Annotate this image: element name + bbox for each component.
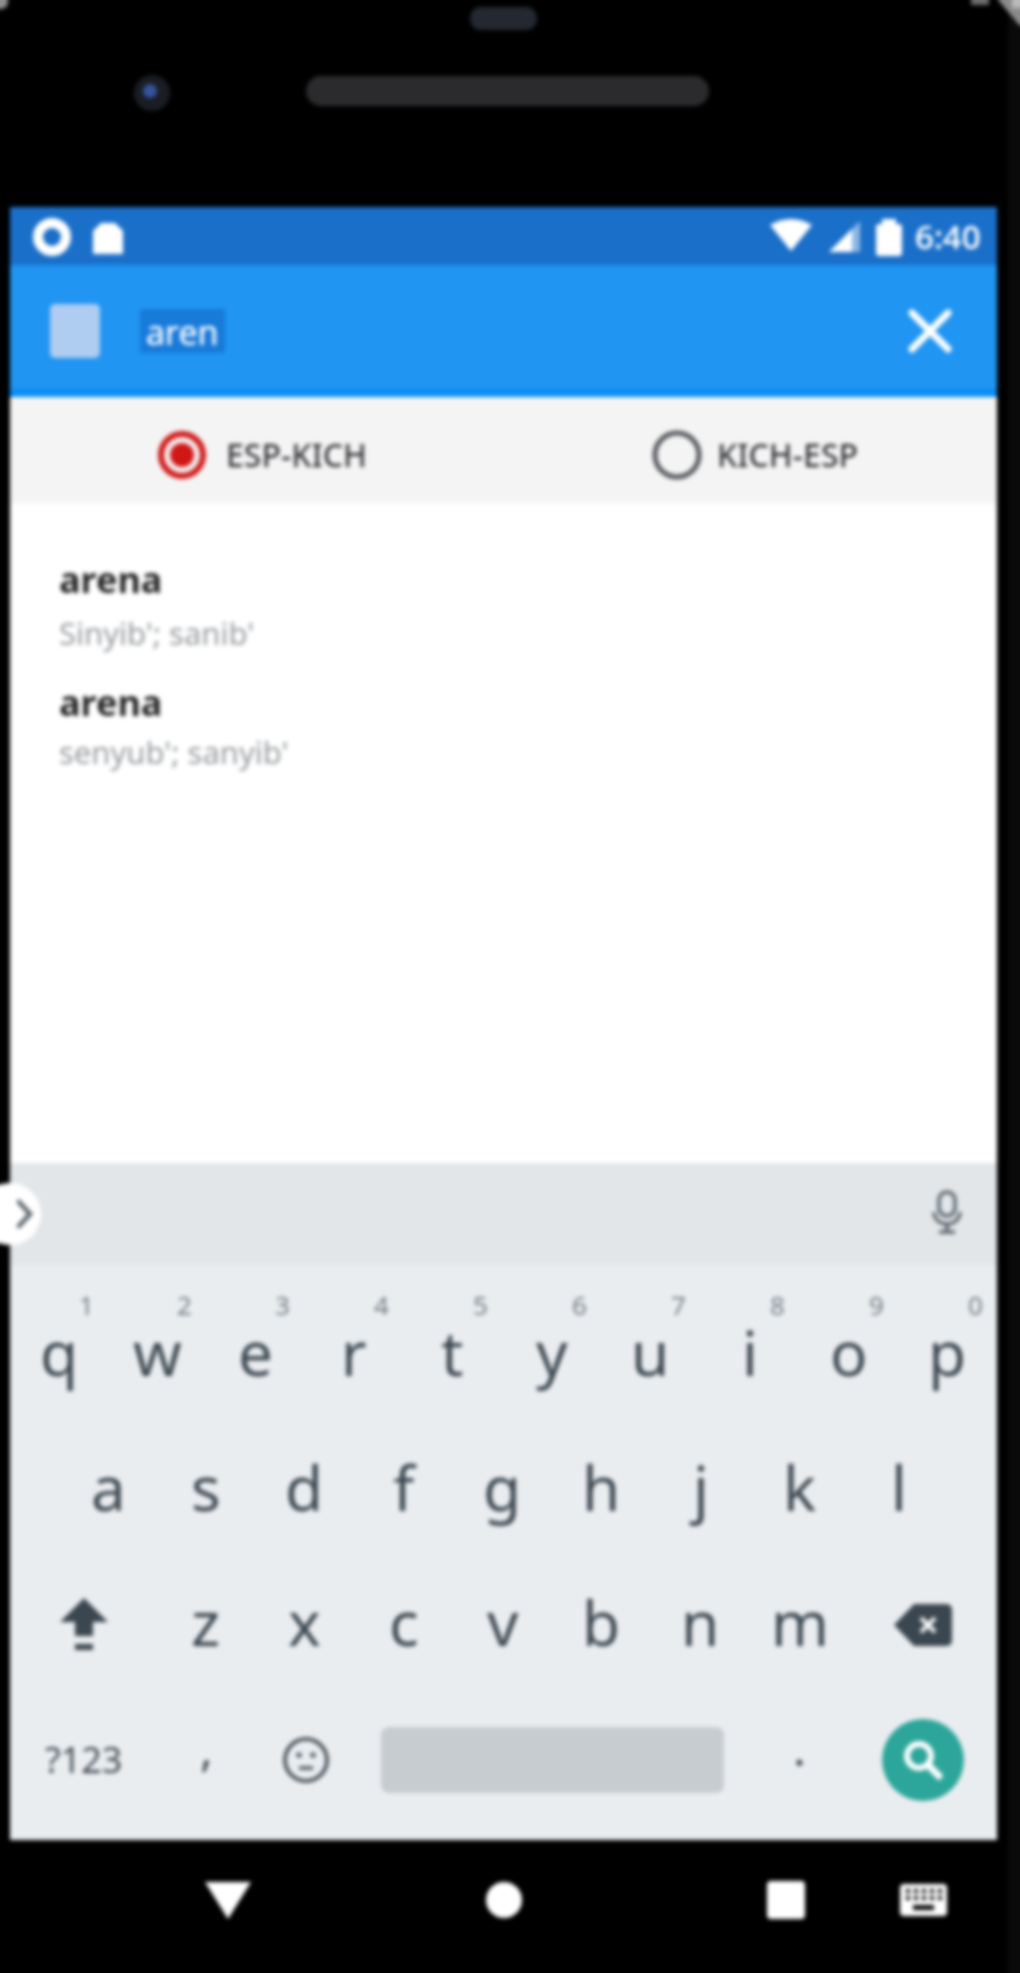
staticText: j bbox=[693, 1445, 709, 1529]
staticText: 3 bbox=[275, 1287, 290, 1322]
staticText: t bbox=[441, 1310, 464, 1394]
button[interactable] bbox=[10, 1557, 157, 1692]
staticText: , bbox=[200, 1715, 213, 1780]
staticText: ESP-KICH bbox=[226, 433, 368, 477]
staticText: a bbox=[91, 1445, 126, 1529]
staticText: senyub'; sanyib' bbox=[59, 731, 289, 773]
button[interactable]: u bbox=[601, 1287, 700, 1422]
button[interactable]: x bbox=[255, 1557, 354, 1692]
button[interactable]: s bbox=[157, 1422, 255, 1557]
staticText: Sinyib'; sanib' bbox=[59, 612, 255, 654]
button[interactable]: k bbox=[750, 1422, 849, 1557]
staticText: 4 bbox=[374, 1287, 389, 1322]
button[interactable]: h bbox=[552, 1422, 651, 1557]
button[interactable] bbox=[195, 1867, 261, 1933]
staticText: g bbox=[483, 1445, 522, 1529]
staticText: b bbox=[582, 1580, 621, 1664]
staticText: ?123 bbox=[45, 1735, 123, 1784]
button[interactable]: , bbox=[157, 1692, 256, 1827]
staticText: 1 bbox=[79, 1287, 94, 1322]
staticText: z bbox=[191, 1580, 221, 1664]
staticText: KICH-ESP bbox=[717, 433, 859, 477]
button[interactable] bbox=[355, 1692, 750, 1827]
staticText: n bbox=[681, 1580, 720, 1664]
staticText: e bbox=[238, 1310, 273, 1394]
button[interactable]: aren bbox=[146, 309, 219, 353]
button[interactable]: arena bbox=[59, 678, 997, 773]
button[interactable]: . bbox=[750, 1692, 849, 1827]
button[interactable] bbox=[0, 1183, 41, 1245]
button[interactable] bbox=[753, 1867, 819, 1933]
button[interactable]: y bbox=[502, 1287, 601, 1422]
staticText: x bbox=[288, 1580, 321, 1664]
button[interactable]: z bbox=[157, 1557, 255, 1692]
staticText: . bbox=[793, 1715, 806, 1780]
staticText: arena bbox=[59, 555, 163, 604]
staticText: 7 bbox=[671, 1287, 686, 1322]
staticText: m bbox=[771, 1580, 829, 1664]
button[interactable]: arena bbox=[59, 555, 997, 654]
button[interactable]: e bbox=[206, 1287, 304, 1422]
button[interactable]: m bbox=[750, 1557, 849, 1692]
staticText: p bbox=[928, 1310, 967, 1394]
staticText: arena bbox=[59, 678, 163, 727]
staticText: 5 bbox=[473, 1287, 488, 1322]
staticText: 6 bbox=[572, 1287, 587, 1322]
button[interactable]: v bbox=[453, 1557, 552, 1692]
button[interactable]: b bbox=[552, 1557, 651, 1692]
button[interactable]: q bbox=[10, 1287, 108, 1422]
button[interactable]: i bbox=[700, 1287, 799, 1422]
button[interactable]: n bbox=[651, 1557, 750, 1692]
staticText: h bbox=[582, 1445, 621, 1529]
staticText: 9 bbox=[869, 1287, 884, 1322]
button[interactable]: f bbox=[354, 1422, 453, 1557]
button[interactable]: l bbox=[849, 1422, 948, 1557]
staticText: 8 bbox=[770, 1287, 785, 1322]
staticText: w bbox=[133, 1310, 182, 1394]
staticText: q bbox=[40, 1310, 79, 1394]
button[interactable]: c bbox=[354, 1557, 453, 1692]
staticText: 0 bbox=[968, 1287, 983, 1322]
staticText: l bbox=[891, 1445, 907, 1529]
button[interactable] bbox=[256, 1692, 355, 1827]
button[interactable]: p bbox=[898, 1287, 997, 1422]
button[interactable]: w bbox=[108, 1287, 206, 1422]
button[interactable] bbox=[471, 1867, 537, 1933]
button[interactable]: ?123 bbox=[10, 1692, 157, 1827]
button[interactable]: ESP-KICH bbox=[156, 429, 368, 481]
button[interactable] bbox=[50, 304, 100, 358]
button[interactable]: a bbox=[59, 1422, 157, 1557]
button[interactable] bbox=[882, 1719, 964, 1801]
button[interactable] bbox=[900, 301, 960, 361]
staticText: aren bbox=[146, 309, 219, 353]
staticText: i bbox=[742, 1310, 758, 1394]
button[interactable]: r bbox=[304, 1287, 403, 1422]
staticText: y bbox=[536, 1310, 568, 1394]
button[interactable]: t bbox=[403, 1287, 502, 1422]
staticText: s bbox=[191, 1445, 221, 1529]
staticText: u bbox=[631, 1310, 670, 1394]
staticText: c bbox=[389, 1580, 419, 1664]
staticText: o bbox=[830, 1310, 868, 1394]
button[interactable] bbox=[925, 1192, 969, 1236]
staticText: 2 bbox=[177, 1287, 192, 1322]
button[interactable]: o bbox=[799, 1287, 898, 1422]
button[interactable]: g bbox=[453, 1422, 552, 1557]
staticText: 6:40 bbox=[915, 214, 981, 259]
button[interactable]: d bbox=[255, 1422, 354, 1557]
staticText: f bbox=[393, 1445, 415, 1529]
button[interactable] bbox=[849, 1557, 997, 1692]
staticText: d bbox=[285, 1445, 324, 1529]
button[interactable] bbox=[849, 1692, 997, 1827]
staticText: v bbox=[487, 1580, 519, 1664]
button[interactable] bbox=[890, 1867, 956, 1933]
button[interactable]: j bbox=[651, 1422, 750, 1557]
staticText: k bbox=[783, 1445, 817, 1529]
staticText: r bbox=[341, 1310, 367, 1394]
button[interactable]: KICH-ESP bbox=[651, 429, 859, 481]
